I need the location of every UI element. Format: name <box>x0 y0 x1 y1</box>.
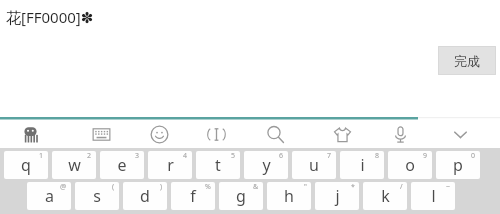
staticText: 0 <box>471 151 476 161</box>
button[interactable]: e <box>100 151 144 179</box>
staticText: 1 <box>39 151 44 161</box>
button[interactable]: i <box>340 151 384 179</box>
staticText: p <box>453 154 463 176</box>
button[interactable]: a <box>27 182 71 210</box>
staticText: 2 <box>87 151 92 161</box>
staticText: @ <box>60 182 67 192</box>
button[interactable]: h <box>267 182 311 210</box>
staticText: / <box>400 182 403 192</box>
staticText: % <box>205 182 211 192</box>
staticText: ~ <box>446 182 451 192</box>
staticText: i <box>360 154 365 176</box>
button[interactable]: u <box>292 151 336 179</box>
button[interactable]: Emoji sticker <box>15 121 45 147</box>
button[interactable]: d <box>123 182 167 210</box>
button[interactable]: s <box>75 182 119 210</box>
button[interactable]: Symbols <box>201 121 231 147</box>
staticText: j <box>335 185 340 207</box>
staticText: d <box>140 185 150 207</box>
staticText: 6 <box>279 151 284 161</box>
staticText: 3 <box>135 151 140 161</box>
button[interactable]: f <box>171 182 215 210</box>
button[interactable]: k <box>363 182 407 210</box>
button[interactable]: t <box>196 151 240 179</box>
staticText: 8 <box>375 151 380 161</box>
button[interactable]: q <box>4 151 48 179</box>
button[interactable]: Hide keyboard <box>445 121 475 147</box>
staticText: f <box>190 185 196 207</box>
staticText: s <box>93 185 101 207</box>
button[interactable]: r <box>148 151 192 179</box>
staticText: 7 <box>327 151 332 161</box>
button[interactable]: Search <box>260 121 290 147</box>
staticText: a <box>45 185 54 207</box>
staticText: & <box>253 182 259 192</box>
staticText: ( <box>112 182 115 192</box>
staticText: u <box>309 154 319 176</box>
staticText: e <box>117 154 127 176</box>
staticText: r <box>167 154 174 176</box>
button[interactable]: Keyboard <box>86 121 116 147</box>
button[interactable]: l <box>411 182 455 210</box>
staticText: * <box>351 182 355 192</box>
staticText: 花[FF0000]✽ <box>6 7 94 27</box>
button[interactable]: Emoticons <box>144 121 174 147</box>
staticText: k <box>381 185 390 207</box>
button[interactable]: j <box>315 182 359 210</box>
button[interactable]: 完成 <box>438 46 496 75</box>
button[interactable]: Themes <box>327 121 357 147</box>
staticText: 9 <box>423 151 428 161</box>
staticText: q <box>21 154 31 176</box>
staticText: l <box>431 185 436 207</box>
staticText: g <box>236 185 246 207</box>
button[interactable]: Voice input <box>385 121 415 147</box>
staticText: t <box>215 154 221 176</box>
staticText: 4 <box>183 151 188 161</box>
button[interactable]: p <box>436 151 480 179</box>
button[interactable]: y <box>244 151 288 179</box>
staticText: y <box>262 154 271 176</box>
button[interactable]: o <box>388 151 432 179</box>
staticText: h <box>284 185 294 207</box>
staticText: " <box>304 182 307 192</box>
staticText: ) <box>160 182 163 192</box>
staticText: o <box>405 154 415 176</box>
staticText: w <box>68 154 81 176</box>
staticText: 完成 <box>454 53 480 69</box>
staticText: 5 <box>231 151 236 161</box>
button[interactable]: g <box>219 182 263 210</box>
button[interactable]: w <box>52 151 96 179</box>
